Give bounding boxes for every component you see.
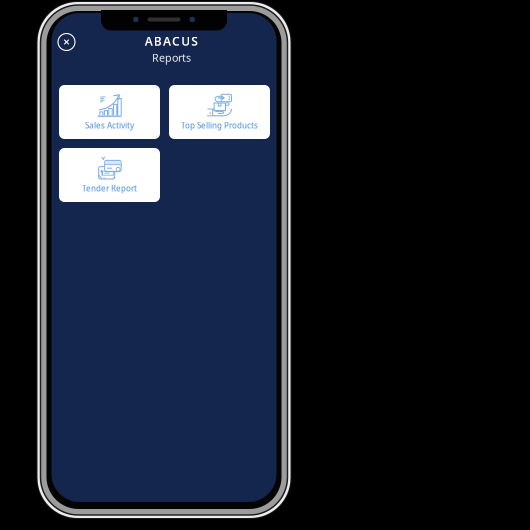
staticText: A — [145, 33, 153, 49]
button[interactable]: Tender Report — [59, 148, 160, 202]
staticText: C — [172, 33, 180, 49]
staticText: S — [191, 33, 198, 49]
staticText: Reports — [152, 50, 191, 65]
staticText: B — [154, 33, 162, 49]
button[interactable]: Sales Activity — [59, 85, 160, 139]
staticText: A — [163, 33, 171, 49]
staticText: Sales Activity — [85, 120, 134, 131]
button[interactable]: Close — [53, 29, 79, 55]
staticText: U — [181, 33, 190, 49]
staticText: Top Selling Products — [181, 120, 258, 131]
staticText: Tender Report — [82, 183, 137, 194]
button[interactable]: Top Selling Products — [169, 85, 270, 139]
